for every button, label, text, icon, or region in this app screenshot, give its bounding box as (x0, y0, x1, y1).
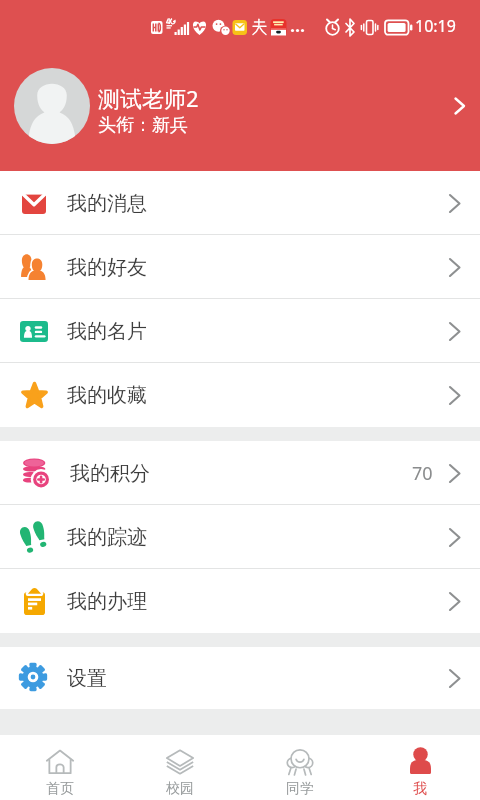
button[interactable]: 同学 (240, 735, 360, 800)
button[interactable]: 我 (360, 735, 480, 800)
staticText: 我 (413, 780, 427, 798)
button[interactable]: 我的消息 (0, 171, 480, 235)
button[interactable]: 我的收藏 (0, 363, 480, 427)
staticText: 测试老师2 (98, 83, 199, 113)
staticText: 70 (412, 461, 433, 486)
button[interactable]: 校园 (120, 735, 240, 800)
staticText: 我的名片 (67, 319, 147, 344)
staticText: 校园 (166, 780, 194, 798)
button[interactable]: 首页 (0, 735, 120, 800)
staticText: 同学 (286, 780, 314, 798)
button[interactable]: 我的踪迹 (0, 505, 480, 569)
staticText: 我的办理 (67, 589, 147, 614)
button[interactable]: 我的办理 (0, 569, 480, 633)
staticText: 我的积分 (70, 461, 150, 486)
staticText: 头衔：新兵 (98, 114, 188, 137)
staticText: 我的好友 (67, 255, 147, 280)
staticText: 设置 (67, 666, 107, 691)
button[interactable]: 我的名片 (0, 299, 480, 363)
staticText: 我的踪迹 (67, 525, 147, 550)
button[interactable]: 设置 (0, 647, 480, 709)
staticText: 我的收藏 (67, 383, 147, 408)
button[interactable]: 我的好友 (0, 235, 480, 299)
staticText: 首页 (46, 780, 74, 798)
button[interactable]: 我的积分 (0, 441, 480, 505)
button[interactable]: 测试老师2 (0, 0, 480, 171)
staticText: 10:19 (415, 15, 456, 37)
staticText: 我的消息 (67, 191, 147, 216)
